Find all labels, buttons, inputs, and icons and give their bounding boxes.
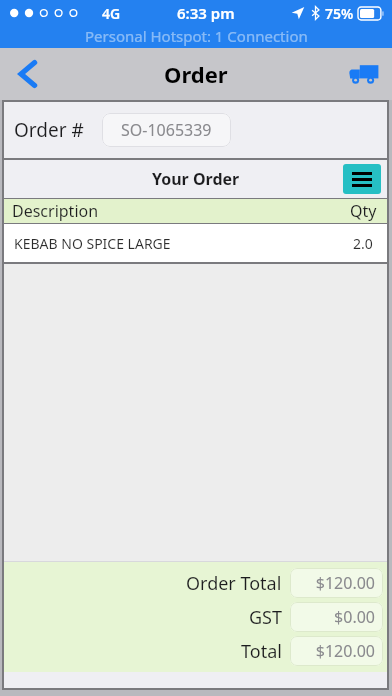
button[interactable]: $120.00: [290, 636, 383, 666]
staticText: KEBAB NO SPICE LARGE: [14, 234, 171, 253]
button[interactable]: KEBAB NO SPICE LARGE: [4, 224, 387, 262]
staticText: 4G: [102, 4, 121, 23]
staticText: Personal Hotspot: 1 Connection: [85, 26, 308, 46]
staticText: GST: [249, 605, 282, 630]
button[interactable]: Delivery: [336, 48, 392, 100]
staticText: 2.0: [353, 234, 373, 253]
staticText: 75%: [325, 4, 354, 23]
button[interactable]: $120.00: [290, 568, 383, 598]
button[interactable]: Menu: [343, 164, 381, 194]
staticText: Total: [241, 639, 282, 664]
staticText: $120.00: [315, 572, 375, 594]
staticText: Order: [164, 59, 228, 89]
button[interactable]: $0.00: [290, 602, 383, 632]
staticText: SO-1065339: [121, 119, 212, 141]
staticText: Description: [12, 200, 99, 222]
staticText: $120.00: [315, 640, 375, 662]
staticText: Qty: [350, 200, 377, 222]
staticText: Your Order: [152, 168, 240, 190]
button[interactable]: Back: [0, 48, 54, 100]
staticText: Order #: [14, 117, 84, 143]
staticText: Order Total: [186, 571, 282, 596]
staticText: $0.00: [334, 606, 375, 628]
staticText: 6:33 pm: [177, 3, 235, 23]
button[interactable]: SO-1065339: [102, 113, 231, 147]
